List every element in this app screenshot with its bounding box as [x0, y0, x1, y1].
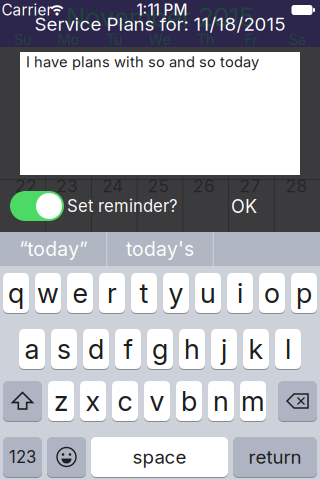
staticText: x [85, 384, 100, 418]
staticText: a [24, 332, 39, 366]
staticText: d [88, 332, 104, 366]
staticText: 24 [102, 175, 123, 196]
staticText: “today” [19, 237, 87, 261]
staticText: w [37, 276, 59, 310]
staticText: r [107, 276, 117, 310]
staticText: t [139, 276, 148, 310]
staticText: 27 [239, 175, 260, 196]
staticText: 26 [193, 175, 215, 196]
button[interactable]: Shift [3, 380, 42, 421]
staticText: k [248, 332, 263, 366]
button[interactable]: p [291, 272, 317, 313]
button[interactable]: b [176, 380, 202, 421]
staticText: g [152, 332, 168, 366]
button[interactable]: x [80, 380, 106, 421]
staticText: i [237, 276, 243, 310]
button[interactable]: h [179, 328, 205, 369]
button[interactable]: s [51, 328, 77, 369]
button[interactable]: j [211, 328, 237, 369]
button[interactable]: k [243, 328, 269, 369]
button[interactable]: q [3, 272, 29, 313]
button[interactable]: l [275, 328, 301, 369]
button[interactable]: z [48, 380, 74, 421]
button[interactable]: g [147, 328, 173, 369]
button[interactable]: Delete [278, 380, 317, 421]
staticText: 1:11 PM [136, 1, 187, 19]
staticText: f [123, 332, 132, 366]
button[interactable]: f [115, 328, 141, 369]
button[interactable]: o [259, 272, 285, 313]
button[interactable]: d [83, 328, 109, 369]
staticText: 28 [285, 175, 307, 196]
staticText: November 2015 [66, 1, 254, 33]
staticText: o [264, 276, 280, 310]
staticText: Su [14, 31, 32, 48]
staticText: I have plans with so and so today [26, 53, 259, 71]
staticText: l [285, 332, 291, 366]
staticText: v [149, 384, 164, 418]
button[interactable]: n [208, 380, 234, 421]
button[interactable]: return [233, 436, 317, 477]
staticText: Service Plans for: 11/18/2015 [34, 13, 285, 35]
button[interactable]: Emoji [47, 436, 86, 477]
staticText: 25 [147, 175, 169, 196]
staticText: 23 [56, 175, 78, 196]
button[interactable]: a [19, 328, 45, 369]
button[interactable]: v [144, 380, 170, 421]
button[interactable]: today's [107, 232, 213, 266]
staticText: c [117, 384, 132, 418]
button[interactable]: m [240, 380, 266, 421]
button[interactable]: t [131, 272, 157, 313]
button[interactable]: Set reminder [10, 191, 64, 221]
staticText: Tu [106, 31, 123, 48]
button[interactable]: e [67, 272, 93, 313]
button[interactable]: “today” [0, 232, 106, 266]
staticText: n [213, 384, 229, 418]
staticText: Mo [58, 31, 80, 48]
staticText: today's [126, 237, 194, 261]
button[interactable]: y [163, 272, 189, 313]
staticText: j [221, 332, 227, 366]
staticText: p [296, 276, 312, 310]
staticText: s [57, 332, 71, 366]
staticText: q [8, 276, 24, 310]
staticText: z [54, 384, 68, 418]
staticText: 22 [15, 175, 37, 196]
staticText: OK [231, 196, 257, 217]
staticText: Fr [244, 31, 258, 48]
button[interactable]: i [227, 272, 253, 313]
staticText: Th [197, 31, 215, 48]
staticText: space [132, 446, 186, 468]
staticText: h [184, 332, 200, 366]
staticText: u [200, 276, 216, 310]
button[interactable]: 123 [3, 436, 42, 477]
staticText: Sa [289, 31, 306, 48]
button[interactable]: OK [222, 191, 266, 221]
staticText: y [168, 276, 183, 310]
button[interactable]: space [91, 436, 228, 477]
staticText: Carrier [1, 1, 52, 19]
button[interactable]: c [112, 380, 138, 421]
staticText: e [72, 276, 87, 310]
staticText: m [241, 384, 265, 418]
staticText: Set reminder? [67, 196, 178, 216]
button[interactable]: u [195, 272, 221, 313]
button[interactable]: w [35, 272, 61, 313]
staticText: return [248, 446, 301, 468]
staticText: 123 [9, 447, 36, 467]
staticText: We [148, 31, 171, 48]
button[interactable]: r [99, 272, 125, 313]
staticText: b [181, 384, 197, 418]
